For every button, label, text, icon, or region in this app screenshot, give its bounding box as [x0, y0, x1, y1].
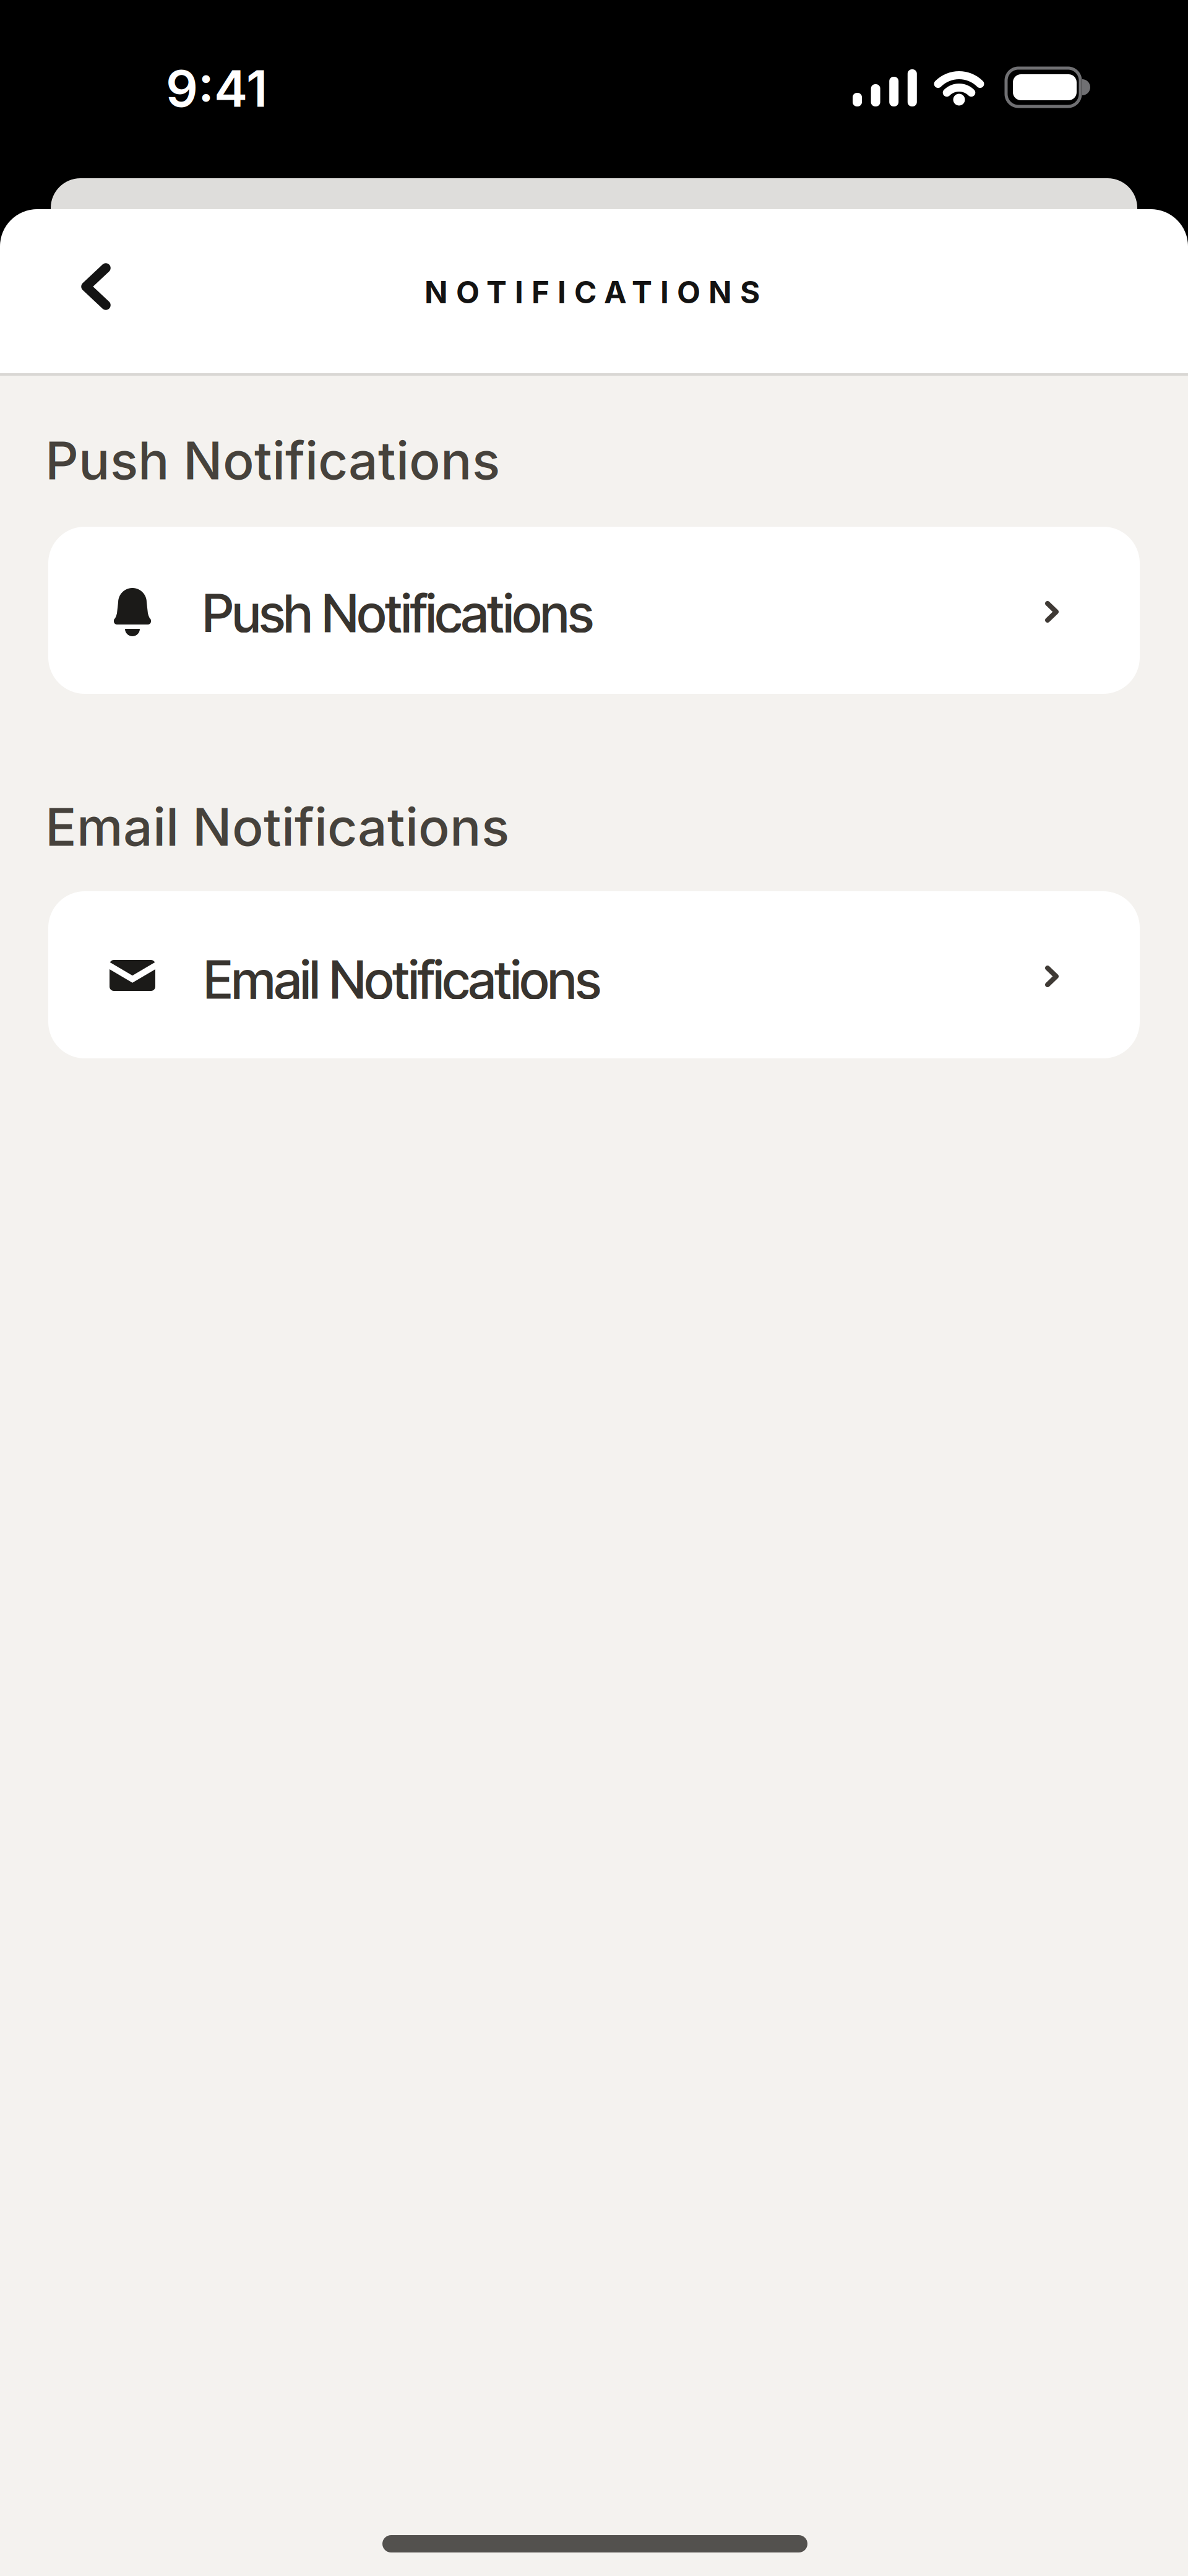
button[interactable]: Back	[43, 256, 160, 318]
staticText: Push Notifications	[202, 582, 593, 645]
staticText: NOTIFICATIONS	[424, 274, 760, 311]
staticText: Email Notifications	[45, 795, 509, 858]
staticText: Push Notifications	[45, 429, 500, 492]
button[interactable]: Push Notifications	[48, 527, 1140, 694]
staticText: 9:41	[166, 58, 267, 119]
button[interactable]: Email Notifications	[48, 891, 1140, 1058]
staticText: Email Notifications	[204, 948, 601, 1011]
